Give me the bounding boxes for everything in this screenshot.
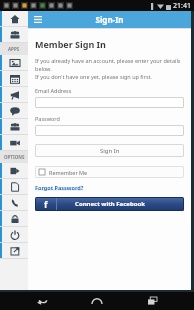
staticText: If you already have an account, please e… [35,57,184,73]
button[interactable]: Remember Me [35,166,184,178]
staticText: f [44,198,48,210]
staticText: Connect with Facebook [57,200,163,208]
button[interactable]: Recent apps [139,292,165,310]
staticText: APPS [8,46,20,52]
button[interactable] [35,97,184,108]
button[interactable]: Power [0,227,28,243]
button[interactable]: Sign In [35,144,184,157]
button[interactable]: Call [0,195,28,211]
button[interactable]: Security [0,211,28,227]
button[interactable]: Forgot Password? [35,184,84,191]
button[interactable]: Home [0,11,28,27]
staticText: Sign In [100,147,120,155]
button[interactable]: Menu [32,14,43,25]
button[interactable]: Groups [0,27,28,43]
button[interactable]: Open external [0,243,28,259]
button[interactable]: Documents [0,179,28,195]
button[interactable]: Announcements [0,87,28,103]
button[interactable]: Sign in [0,163,28,179]
button[interactable] [35,125,184,136]
staticText: OPTIONS [4,154,25,160]
button[interactable]: Messages [0,103,28,119]
button[interactable]: Home [84,292,110,310]
button[interactable]: Back [29,292,55,310]
staticText: Password [35,115,60,122]
button[interactable]: Calendar [0,71,28,87]
staticText: Remember Me [49,169,88,176]
staticText: Member Sign In [35,38,106,50]
staticText: Forgot Password? [35,184,84,191]
button[interactable]: Broadcast [0,119,28,135]
staticText: If you don't have one yet, please sign u… [35,73,153,80]
button[interactable]: Video [0,135,28,151]
staticText: Email Address [35,87,72,94]
button[interactable]: f [35,197,184,211]
button[interactable]: Photos [0,55,28,71]
staticText: 21:41 [173,1,191,11]
staticText: Sign-In [28,14,191,25]
